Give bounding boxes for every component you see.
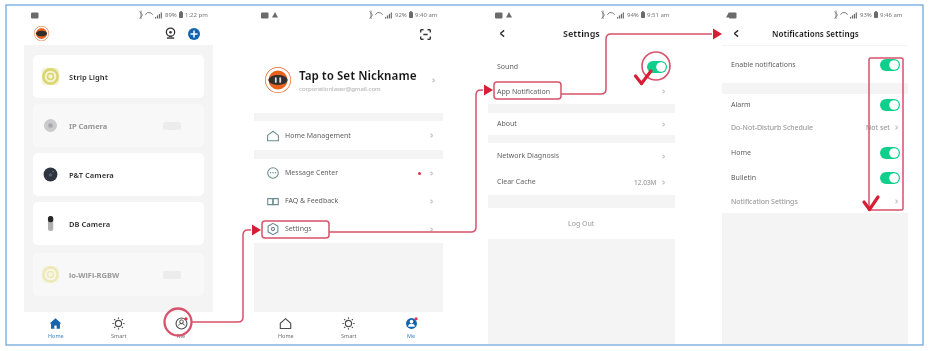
button[interactable]: Me <box>380 312 443 344</box>
button[interactable]: Home Management <box>254 121 443 150</box>
button[interactable]: Smart <box>317 312 380 344</box>
button[interactable]: io-WiFi-RGBW <box>33 253 204 296</box>
button[interactable]: Smart <box>87 312 150 344</box>
staticText: Home <box>731 148 751 158</box>
button[interactable]: Home <box>722 140 908 166</box>
staticText: Notification Settings <box>731 197 798 207</box>
button[interactable]: Toggle <box>880 172 900 184</box>
staticText: 92% <box>395 11 407 19</box>
staticText: App Notification <box>497 87 551 97</box>
staticText: Do-Not-Disturb Schedule <box>731 123 813 133</box>
staticText: Settings <box>563 27 600 39</box>
button[interactable]: Back <box>731 28 742 39</box>
button[interactable]: Toggle <box>880 147 900 159</box>
staticText: About <box>497 119 517 129</box>
staticText: P&T Camera <box>69 170 114 180</box>
staticText: Log Out <box>568 219 595 229</box>
button[interactable]: Message Center <box>254 159 443 187</box>
button[interactable]: Me <box>150 312 213 344</box>
button[interactable]: About <box>488 113 675 135</box>
button[interactable]: Back <box>497 28 508 39</box>
staticText: Settings <box>285 224 312 234</box>
staticText: 12.03M <box>634 178 657 187</box>
staticText: FAQ & Feedback <box>285 196 339 206</box>
button[interactable]: Bulletin <box>722 166 908 190</box>
button[interactable]: Notification Settings <box>722 190 908 213</box>
button[interactable]: Network Diagnosis <box>488 143 675 169</box>
button[interactable]: Toggle <box>647 61 667 73</box>
button[interactable]: Add device <box>188 28 200 40</box>
staticText: IP Camera <box>69 121 108 131</box>
staticText: Strip Light <box>69 72 108 82</box>
staticText: Clear Cache <box>497 177 536 187</box>
staticText: corporationlaser@gmail.com <box>299 85 381 93</box>
button[interactable]: DB Camera <box>33 202 204 245</box>
button[interactable]: IP Camera <box>33 104 204 147</box>
button[interactable]: Scan <box>420 29 431 40</box>
staticText: Not set <box>866 123 890 133</box>
staticText: io-WiFi-RGBW <box>69 270 120 280</box>
button[interactable]: Sound <box>488 54 675 79</box>
staticText: Tap to Set Nickname <box>299 68 417 84</box>
staticText: Bulletin <box>731 173 757 183</box>
staticText: 9:40 am <box>415 11 438 19</box>
staticText: Home <box>48 332 64 339</box>
button[interactable]: Clear Cache <box>488 169 675 195</box>
button[interactable]: Profile <box>34 26 49 41</box>
staticText: 9:46 am <box>880 11 903 19</box>
button[interactable]: Settings <box>254 215 443 243</box>
staticText: Smart <box>111 332 127 339</box>
button[interactable]: Home <box>24 312 87 344</box>
staticText: Notifications Settings <box>772 28 859 39</box>
staticText: Sound <box>497 62 519 72</box>
staticText: Smart <box>341 332 357 339</box>
staticText: 89% <box>165 11 177 19</box>
staticText: Me <box>407 332 416 339</box>
staticText: 93% <box>860 11 872 19</box>
button[interactable]: App Notification <box>488 79 675 104</box>
button[interactable]: FAQ & Feedback <box>254 187 443 215</box>
button[interactable]: Log Out <box>488 208 675 239</box>
staticText: 9:51 am <box>647 11 670 19</box>
staticText: DB Camera <box>69 219 111 229</box>
button[interactable]: Toggle <box>880 99 900 111</box>
button[interactable]: Camera <box>164 27 177 40</box>
button[interactable]: Toggle <box>880 59 900 71</box>
button[interactable]: Alarm <box>722 94 908 115</box>
button[interactable]: Do-Not-Disturb Schedule <box>722 115 908 140</box>
staticText: Me <box>177 332 186 339</box>
button[interactable]: P&T Camera <box>33 153 204 196</box>
button[interactable]: Enable notifications <box>722 46 908 83</box>
button[interactable]: Tap to Set Nickname <box>254 54 443 106</box>
staticText: Home <box>278 332 294 339</box>
button[interactable]: Home <box>254 312 317 344</box>
staticText: Home Management <box>285 131 351 141</box>
staticText: Enable notifications <box>731 60 796 70</box>
staticText: Alarm <box>731 100 751 110</box>
button[interactable]: Strip Light <box>33 55 204 98</box>
staticText: 94% <box>627 11 639 19</box>
staticText: 1:22 pm <box>185 11 208 19</box>
staticText: Network Diagnosis <box>497 151 560 161</box>
staticText: Message Center <box>285 168 339 178</box>
